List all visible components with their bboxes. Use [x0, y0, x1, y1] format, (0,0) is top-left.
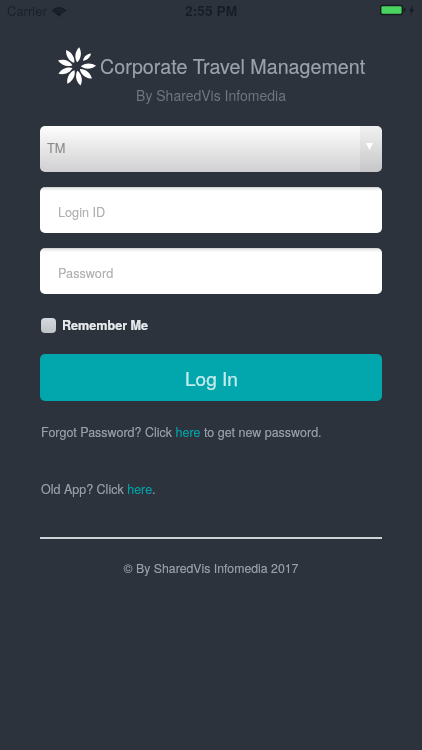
staticText: TM: [47, 138, 66, 156]
staticText: By SharedVis Infomedia: [0, 85, 422, 105]
staticText: Password: [58, 263, 114, 281]
button[interactable]: TM: [40, 126, 382, 172]
staticText: Corporate Travel Management: [100, 51, 366, 79]
staticText: Carrier: [7, 1, 47, 20]
staticText: Forgot Password? Click here to get new p…: [41, 423, 322, 441]
button[interactable]: Login ID: [40, 187, 382, 233]
button[interactable]: Remember Me: [41, 316, 149, 334]
button[interactable]: Password: [40, 248, 382, 294]
staticText: 2:55 PM: [185, 0, 238, 20]
staticText: Login ID: [58, 202, 106, 220]
button[interactable]: Forgot Password? Click here to get new p…: [41, 423, 322, 441]
button[interactable]: Old App? Click here.: [41, 480, 156, 498]
staticText: Remember Me: [62, 316, 149, 334]
other: Open dropdown: [360, 126, 382, 172]
staticText: Log In: [185, 364, 238, 391]
button[interactable]: Log In: [40, 354, 382, 401]
staticText: Old App? Click here.: [41, 480, 156, 498]
staticText: © By SharedVis Infomedia 2017: [0, 559, 422, 577]
